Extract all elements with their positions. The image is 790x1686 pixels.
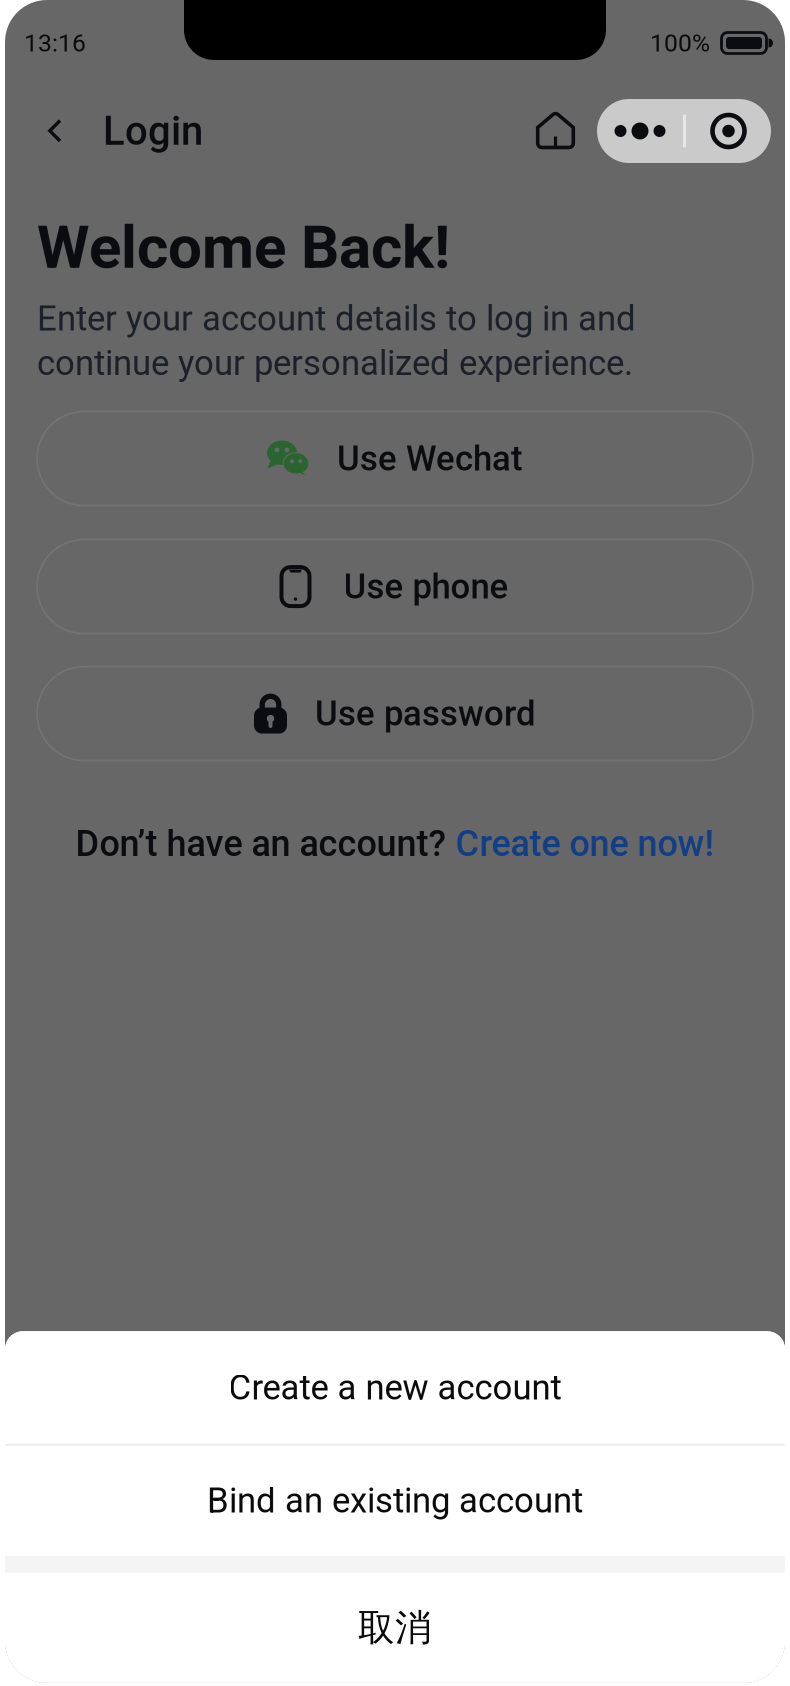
staticText: Use phone	[343, 566, 508, 607]
staticText: 13:16	[24, 28, 86, 57]
staticText: 取消	[358, 1605, 432, 1651]
button[interactable]: Use phone	[37, 540, 753, 634]
staticText: Bind an existing account	[207, 1480, 583, 1521]
staticText: Enter your account details to log in and…	[37, 298, 636, 384]
button[interactable]: 取消	[5, 1573, 785, 1683]
staticText: Create a new account	[228, 1367, 561, 1408]
staticText: Don’t have an account?	[75, 823, 455, 865]
button[interactable]: Use Wechat	[37, 412, 753, 506]
button[interactable]: Home	[525, 100, 587, 162]
staticText: Login	[103, 108, 203, 154]
button[interactable]: Bind an existing account	[5, 1446, 785, 1556]
button[interactable]: Back	[37, 96, 73, 166]
staticText: 100%	[650, 28, 710, 57]
button[interactable]: Use password	[37, 667, 753, 761]
button[interactable]: Create one now!	[455, 823, 714, 865]
staticText: Create one now!	[455, 823, 714, 865]
staticText: Welcome Back!	[37, 212, 450, 282]
button[interactable]: More options	[597, 99, 771, 163]
button[interactable]: Create a new account	[5, 1331, 785, 1444]
staticText: Use password	[315, 693, 536, 734]
staticText: Use Wechat	[337, 438, 523, 479]
